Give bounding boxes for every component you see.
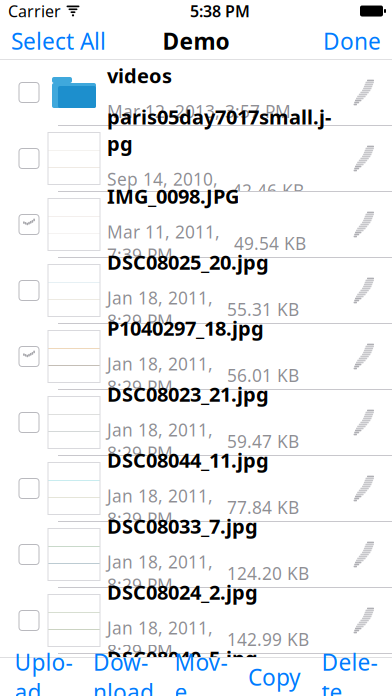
button[interactable]: Select DSC08044_11.jpg bbox=[0, 456, 48, 521]
staticText: DSC08023_21.jpg bbox=[107, 381, 269, 407]
button[interactable]: Select All bbox=[0, 22, 117, 60]
staticText: DSC08044_11.jpg bbox=[107, 447, 269, 473]
staticText: Jan 18, 2011, 8:29 PM bbox=[107, 418, 213, 464]
staticText: DSC08040_5.jpg bbox=[107, 645, 258, 671]
button[interactable]: Select DSC08025_20.jpg bbox=[0, 258, 48, 323]
button[interactable]: Rename videos bbox=[340, 60, 392, 125]
staticText: 56.01 KB bbox=[227, 364, 299, 387]
button[interactable]: Move bbox=[168, 658, 233, 696]
button[interactable]: Rename P1040297_18.jpg bbox=[340, 324, 392, 389]
button[interactable]: Select paris05day7017small.jpg bbox=[0, 126, 48, 191]
staticText: IMG_0098.JPG bbox=[107, 183, 239, 209]
staticText: 142.99 KB bbox=[227, 628, 309, 651]
staticText: Jan 18, 2011, 8:29 PM bbox=[107, 286, 213, 332]
button[interactable]: Rename IMG_0098.JPG bbox=[340, 192, 392, 257]
staticText: DSC08025_20.jpg bbox=[107, 249, 269, 275]
button[interactable]: DSC08040_5.jpg bbox=[0, 654, 392, 696]
staticText: 124.20 KB bbox=[227, 562, 309, 585]
staticText: Jan 18, 2011, 8:29 PM bbox=[107, 484, 213, 530]
button[interactable]: IMG_0098.JPG bbox=[0, 192, 392, 258]
staticText: Jan 18, 2011, 8:29 PM bbox=[107, 550, 213, 596]
staticText: 55.31 KB bbox=[227, 298, 299, 321]
staticText: Done bbox=[323, 26, 381, 56]
staticText: Jan 18, 2011, 8:29 PM bbox=[107, 616, 213, 662]
staticText: 49.54 KB bbox=[234, 232, 306, 255]
staticText: Sep 14, 2010, 9:55 AM bbox=[107, 167, 218, 213]
button[interactable]: Select videos bbox=[0, 60, 48, 125]
button[interactable]: DSC08023_21.jpg bbox=[0, 390, 392, 456]
staticText: paris05day7017small.jpg bbox=[107, 103, 331, 156]
staticText: Select All bbox=[11, 26, 106, 56]
staticText: Carrier bbox=[8, 0, 61, 22]
button[interactable]: P1040297_18.jpg bbox=[0, 324, 392, 390]
staticText: videos bbox=[107, 62, 172, 89]
button[interactable]: Select DSC08033_7.jpg bbox=[0, 522, 48, 587]
button[interactable]: Rename DSC08023_21.jpg bbox=[340, 390, 392, 455]
staticText: 5:38 PM bbox=[190, 0, 250, 22]
staticText: 77.84 KB bbox=[227, 496, 299, 519]
staticText: DSC08033_7.jpg bbox=[107, 513, 258, 539]
staticText: Download bbox=[93, 647, 154, 696]
staticText: Copy bbox=[248, 662, 301, 692]
button[interactable]: DSC08033_7.jpg bbox=[0, 522, 392, 588]
button[interactable]: Select DSC08024_2.jpg bbox=[0, 588, 48, 653]
staticText: Move bbox=[174, 647, 227, 696]
button[interactable]: Rename DSC08033_7.jpg bbox=[340, 522, 392, 587]
button[interactable]: Download bbox=[87, 658, 160, 696]
staticText: DSC08024_2.jpg bbox=[107, 579, 258, 605]
staticText: Upload bbox=[14, 647, 72, 696]
button[interactable]: Done bbox=[312, 22, 392, 60]
button[interactable]: DSC08025_20.jpg bbox=[0, 258, 392, 324]
button[interactable]: Copy bbox=[242, 658, 307, 696]
button[interactable]: Rename DSC08025_20.jpg bbox=[340, 258, 392, 323]
button[interactable]: DSC08024_2.jpg bbox=[0, 588, 392, 654]
button[interactable]: Deselect IMG_0098.JPG bbox=[0, 192, 48, 257]
staticText: 42.46 KB bbox=[232, 179, 304, 202]
staticText: Jan 18, 2011, 8:29 PM bbox=[107, 682, 213, 696]
button[interactable]: Rename DSC08040_5.jpg bbox=[340, 654, 392, 696]
staticText: Delete bbox=[321, 647, 377, 696]
staticText: Mar 12, 2013, 3:57 PM bbox=[107, 100, 291, 123]
button[interactable]: Rename DSC08024_2.jpg bbox=[340, 588, 392, 653]
button[interactable]: Rename DSC08044_11.jpg bbox=[340, 456, 392, 521]
button[interactable]: DSC08044_11.jpg bbox=[0, 456, 392, 522]
button[interactable]: Upload bbox=[8, 658, 78, 696]
staticText: 59.47 KB bbox=[227, 430, 299, 453]
button[interactable]: Rename paris05day7017small.jpg bbox=[340, 126, 392, 191]
button[interactable]: Select DSC08040_5.jpg bbox=[0, 654, 48, 696]
button[interactable]: Select DSC08023_21.jpg bbox=[0, 390, 48, 455]
staticText: P1040297_18.jpg bbox=[107, 315, 264, 341]
staticText: Mar 11, 2011, 7:39 PM bbox=[107, 220, 220, 266]
staticText: Demo bbox=[162, 26, 229, 56]
button[interactable]: paris05day7017small.jpg bbox=[0, 126, 392, 192]
button[interactable]: Delete bbox=[315, 658, 383, 696]
staticText: Jan 18, 2011, 8:29 PM bbox=[107, 352, 213, 398]
button[interactable]: videos bbox=[0, 60, 392, 126]
button[interactable]: Deselect P1040297_18.jpg bbox=[0, 324, 48, 389]
